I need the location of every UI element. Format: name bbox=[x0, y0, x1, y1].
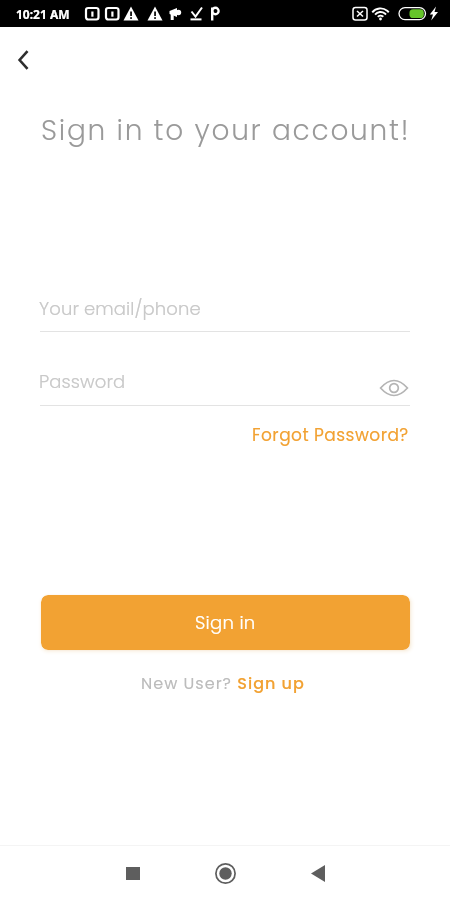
button[interactable]: Back bbox=[295, 851, 340, 896]
staticText: Sign in bbox=[195, 610, 256, 635]
button[interactable]: Forgot Password? bbox=[246, 423, 415, 447]
staticText: 10:21 AM bbox=[16, 6, 70, 22]
button[interactable]: Show password bbox=[378, 372, 410, 404]
staticText: New User? Sign up bbox=[141, 672, 305, 694]
staticText: Password bbox=[39, 369, 126, 394]
button[interactable]: Sign in bbox=[41, 595, 410, 650]
staticText: Forgot Password? bbox=[252, 423, 409, 447]
button[interactable]: New User? Sign up bbox=[135, 672, 311, 694]
button[interactable]: Back bbox=[6, 42, 42, 78]
staticText: Sign in to your account! bbox=[41, 111, 411, 150]
staticText: Your email/phone bbox=[39, 296, 201, 321]
button[interactable]: Email or phone input field bbox=[40, 292, 410, 332]
button[interactable]: Recent apps bbox=[110, 851, 155, 896]
button[interactable]: Home bbox=[203, 851, 248, 896]
button[interactable]: Password input field bbox=[40, 366, 370, 406]
